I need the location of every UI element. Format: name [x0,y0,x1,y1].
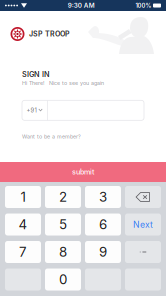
button[interactable]: submit [0,162,166,182]
staticText: Want to be a member? [22,133,81,140]
staticText: 5 [59,216,67,232]
button[interactable]: 1 [5,186,41,208]
button[interactable]: 4 [5,213,41,235]
button[interactable]: Symbols [125,241,161,263]
staticText: 9 [99,244,107,260]
staticText: 1 [20,189,25,205]
staticText: JSP TROOP [29,30,70,38]
button[interactable]: Delete [125,186,161,208]
button[interactable]: Next [125,213,161,235]
staticText: 0 [59,271,67,287]
button[interactable]: 6 [85,213,121,235]
button[interactable]: 9 [85,241,121,263]
staticText: 4 [18,216,27,232]
staticText: 6 [99,216,107,232]
button[interactable]: 7 [5,241,41,263]
staticText: Next [133,219,153,230]
staticText: 7 [19,244,27,260]
staticText: 9:30 AM [68,2,95,9]
staticText: 3 [99,189,107,205]
staticText: 2 [59,189,67,205]
button[interactable]: 0 [45,268,81,290]
button[interactable]: 5 [45,213,81,235]
staticText: 8 [59,244,67,260]
button[interactable]: 3 [85,186,121,208]
staticText: SIGN IN [22,70,50,79]
button[interactable]: 2 [45,186,81,208]
staticText: +91 [26,107,36,114]
button[interactable]: 8 [45,241,81,263]
staticText: submit [72,168,94,176]
staticText: 100% [135,2,151,9]
staticText: Hi There! Nice to see you again [22,80,104,86]
